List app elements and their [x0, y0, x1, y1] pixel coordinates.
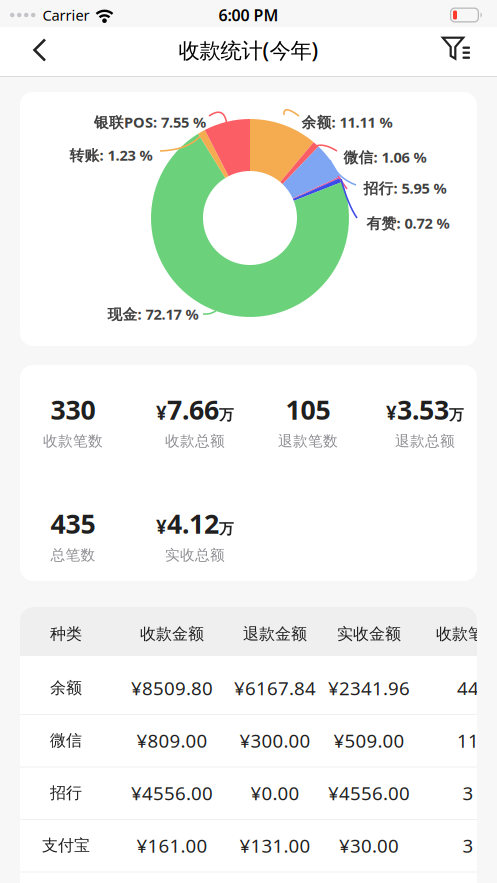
- staticText: ¥509.00: [333, 728, 404, 753]
- staticText: 转账: 1.23 %: [69, 145, 152, 165]
- staticText: 万: [219, 520, 234, 538]
- staticText: ¥300.00: [239, 728, 310, 753]
- staticText: 44: [457, 676, 479, 700]
- staticText: 退款总额: [395, 432, 455, 450]
- staticText: 万: [219, 406, 234, 424]
- staticText: 收款统计(今年): [178, 36, 318, 64]
- staticText: 收款笔数: [436, 624, 497, 644]
- staticText: ¥161.00: [136, 833, 207, 858]
- staticText: 支付宝: [42, 836, 90, 855]
- staticText: 实收金额: [337, 624, 401, 644]
- staticText: 330: [50, 392, 95, 427]
- staticText: ¥4556.00: [131, 781, 213, 805]
- staticText: Carrier: [42, 5, 89, 25]
- staticText: ¥: [386, 400, 397, 425]
- staticText: 退款笔数: [278, 432, 338, 450]
- staticText: 招行: 5.95 %: [363, 178, 446, 198]
- staticText: 4.12: [167, 506, 219, 541]
- button[interactable]: Back: [0, 28, 48, 71]
- staticText: ¥0.00: [250, 781, 299, 805]
- staticText: 银联POS: 7.55 %: [94, 112, 206, 132]
- staticText: 收款总额: [165, 432, 225, 450]
- staticText: 11: [457, 728, 479, 753]
- staticText: ¥8509.80: [131, 676, 213, 700]
- staticText: 7.66: [167, 392, 219, 427]
- staticText: 435: [50, 506, 95, 541]
- staticText: ¥6167.84: [234, 676, 316, 700]
- staticText: 招行: [50, 783, 82, 803]
- staticText: ¥30.00: [339, 833, 399, 858]
- staticText: 现金: 72.17 %: [107, 304, 198, 324]
- staticText: 总笔数: [50, 546, 95, 564]
- staticText: ¥2341.96: [328, 676, 410, 700]
- staticText: 退款金额: [243, 624, 307, 644]
- staticText: 种类: [50, 624, 82, 644]
- staticText: ¥131.00: [239, 833, 310, 858]
- staticText: 3: [462, 781, 473, 805]
- staticText: 收款金额: [140, 624, 204, 644]
- staticText: 万: [449, 406, 464, 424]
- button[interactable]: Filter: [442, 28, 497, 71]
- staticText: 收款笔数: [43, 432, 103, 450]
- staticText: 余额: 11.11 %: [301, 112, 392, 132]
- staticText: 6:00 PM: [218, 4, 278, 26]
- staticText: ¥: [156, 400, 167, 425]
- staticText: 微信: [50, 731, 82, 750]
- staticText: 有赞: 0.72 %: [366, 213, 449, 233]
- staticText: ¥809.00: [136, 728, 207, 753]
- staticText: 105: [285, 392, 330, 427]
- staticText: 3.53: [397, 392, 449, 427]
- staticText: 余额: [50, 678, 82, 698]
- staticText: ¥: [156, 514, 167, 539]
- staticText: 3: [462, 833, 473, 858]
- staticText: 微信: 1.06 %: [343, 147, 426, 167]
- staticText: ¥4556.00: [328, 781, 410, 805]
- staticText: 实收总额: [165, 546, 225, 564]
